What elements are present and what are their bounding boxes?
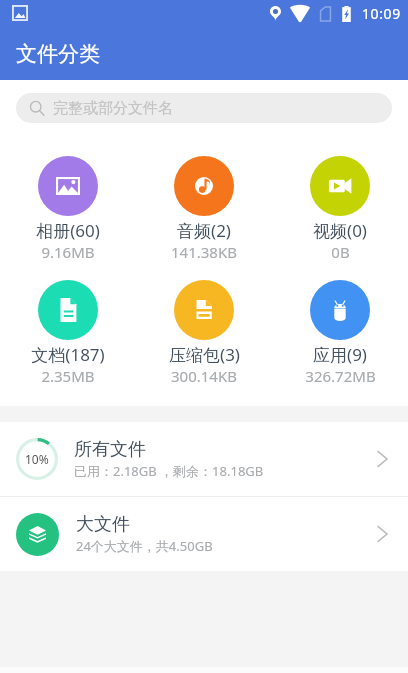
staticText: 文件分类 xyxy=(16,41,100,67)
button[interactable]: 应用(9) xyxy=(272,259,408,383)
staticText: 应用(9) xyxy=(313,343,367,366)
staticText: 326.72MB xyxy=(305,366,376,383)
staticText: 24个大文件，共4.50GB xyxy=(76,537,213,555)
staticText: 300.14KB xyxy=(171,366,237,383)
button[interactable]: 视频(0) xyxy=(272,135,408,259)
staticText: 已用：2.18GB ，剩余：18.18GB xyxy=(74,462,264,480)
staticText: 文档(187) xyxy=(31,343,105,366)
staticText: 完整或部分文件名 xyxy=(53,99,173,118)
staticText: 0B xyxy=(331,242,350,259)
button[interactable]: 相册(60) xyxy=(0,135,136,259)
staticText: 2.35MB xyxy=(41,366,95,383)
staticText: 音频(2) xyxy=(177,219,231,242)
button[interactable]: 10% xyxy=(0,422,408,496)
button[interactable]: 大文件 xyxy=(0,497,408,571)
staticText: 141.38KB xyxy=(171,242,237,259)
staticText: 大文件 xyxy=(76,513,130,536)
staticText: 10:09 xyxy=(362,4,401,23)
button[interactable]: 文档(187) xyxy=(0,259,136,383)
staticText: 所有文件 xyxy=(74,438,146,461)
staticText: 压缩包(3) xyxy=(169,343,240,366)
button[interactable]: 完整或部分文件名 xyxy=(16,93,392,123)
staticText: 9.16MB xyxy=(41,242,95,259)
staticText: 视频(0) xyxy=(313,219,367,242)
other: Open xyxy=(376,450,391,468)
staticText: 相册(60) xyxy=(36,219,100,242)
button[interactable]: 压缩包(3) xyxy=(136,259,272,383)
button[interactable]: 音频(2) xyxy=(136,135,272,259)
staticText: 10% xyxy=(25,451,49,467)
other: Open xyxy=(376,525,391,543)
